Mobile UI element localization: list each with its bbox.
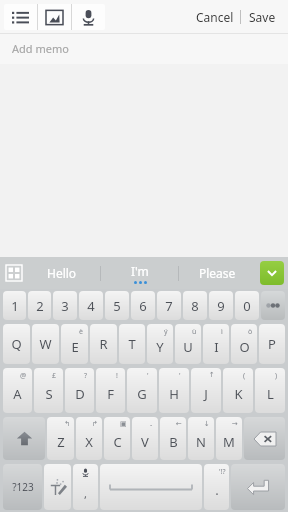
staticText: ù bbox=[192, 327, 197, 337]
button[interactable]: - bbox=[132, 417, 158, 460]
button[interactable]: ↑ bbox=[191, 368, 221, 413]
button[interactable]: 4 bbox=[79, 291, 103, 320]
staticText: U bbox=[183, 338, 193, 356]
staticText: ↓ bbox=[204, 420, 210, 428]
button[interactable]: £ bbox=[34, 368, 63, 413]
staticText: D bbox=[75, 385, 85, 403]
button[interactable]: Space bbox=[100, 464, 202, 510]
staticText: @ bbox=[20, 371, 27, 381]
staticText: ) bbox=[275, 371, 278, 381]
staticText: '!? bbox=[219, 467, 226, 477]
staticText: ↑ bbox=[209, 371, 215, 379]
button[interactable]: ? bbox=[65, 368, 94, 413]
button[interactable]: ?123 bbox=[3, 464, 42, 510]
button[interactable]: 2 bbox=[28, 291, 51, 320]
button[interactable]: Save bbox=[241, 5, 284, 29]
staticText: P bbox=[268, 335, 276, 353]
button[interactable]: , bbox=[73, 464, 98, 510]
button[interactable]: ) bbox=[255, 368, 285, 413]
button[interactable]: ↓ bbox=[188, 417, 214, 460]
button[interactable]: ↰ bbox=[47, 417, 74, 460]
staticText: è bbox=[79, 327, 83, 337]
staticText: ▣ bbox=[120, 420, 127, 428]
staticText: O bbox=[239, 338, 250, 356]
button[interactable]: ' bbox=[127, 368, 157, 413]
button[interactable]: '!? bbox=[204, 464, 229, 510]
staticText: ý bbox=[164, 327, 168, 337]
button[interactable]: Enter bbox=[231, 464, 285, 510]
staticText: B bbox=[169, 433, 178, 451]
button[interactable]: ù bbox=[175, 324, 201, 364]
button[interactable]: W bbox=[32, 324, 59, 364]
button[interactable]: 9 bbox=[209, 291, 233, 320]
staticText: 5 bbox=[113, 297, 121, 315]
button[interactable]: Hello bbox=[23, 257, 100, 289]
button[interactable]: @ bbox=[3, 368, 32, 413]
button[interactable]: 8 bbox=[183, 291, 207, 320]
staticText: ( bbox=[243, 371, 246, 381]
button[interactable]: Hide keyboard bbox=[260, 261, 284, 285]
staticText: I bbox=[214, 338, 219, 356]
staticText: ← bbox=[176, 420, 182, 428]
button[interactable]: More symbols bbox=[261, 291, 285, 320]
button[interactable]: Cancel bbox=[190, 5, 240, 29]
staticText: T bbox=[128, 335, 136, 353]
staticText: S bbox=[45, 385, 53, 403]
staticText: ! bbox=[116, 371, 118, 381]
button[interactable]: 6 bbox=[131, 291, 155, 320]
staticText: 2 bbox=[36, 297, 44, 315]
staticText: R bbox=[99, 335, 108, 353]
button[interactable]: ò bbox=[231, 324, 257, 364]
button[interactable]: Insert image bbox=[38, 4, 71, 30]
button[interactable]: 0 bbox=[235, 291, 259, 320]
button[interactable]: I'm bbox=[101, 257, 178, 289]
staticText: J bbox=[204, 385, 208, 403]
button[interactable]: Voice memo bbox=[72, 4, 105, 30]
button[interactable]: → bbox=[216, 417, 242, 460]
button[interactable]: Please bbox=[179, 257, 256, 289]
staticText: ì bbox=[221, 327, 223, 337]
button[interactable]: 5 bbox=[105, 291, 129, 320]
button[interactable]: Shift bbox=[3, 417, 45, 460]
staticText: 9 bbox=[217, 297, 225, 315]
staticText: A bbox=[13, 385, 22, 403]
button[interactable]: Handwriting bbox=[44, 464, 71, 510]
button[interactable]: ý bbox=[147, 324, 173, 364]
staticText: Add memo bbox=[12, 41, 69, 56]
button[interactable]: 7 bbox=[157, 291, 181, 320]
staticText: ↰ bbox=[64, 420, 70, 428]
button[interactable]: Keyboard options bbox=[5, 264, 23, 282]
staticText: 0 bbox=[243, 297, 251, 315]
staticText: → bbox=[232, 420, 238, 428]
button[interactable]: ' bbox=[159, 368, 189, 413]
staticText: Save bbox=[249, 9, 276, 25]
button[interactable]: Bulleted list bbox=[4, 4, 37, 30]
button[interactable]: è bbox=[61, 324, 88, 364]
button[interactable]: 3 bbox=[53, 291, 77, 320]
button[interactable]: T bbox=[119, 324, 145, 364]
staticText: Z bbox=[57, 433, 65, 451]
staticText: N bbox=[196, 433, 206, 451]
button[interactable]: 1 bbox=[3, 291, 26, 320]
button[interactable]: P bbox=[259, 324, 285, 364]
staticText: 6 bbox=[139, 297, 147, 315]
button[interactable]: ì bbox=[203, 324, 229, 364]
button[interactable]: Q bbox=[3, 324, 30, 364]
staticText: ' bbox=[179, 371, 181, 381]
button[interactable]: ▣ bbox=[104, 417, 130, 460]
staticText: X bbox=[85, 433, 93, 451]
staticText: Y bbox=[156, 338, 164, 356]
button[interactable]: ← bbox=[160, 417, 186, 460]
button[interactable]: Delete bbox=[244, 417, 285, 460]
staticText: C bbox=[113, 433, 122, 451]
staticText: 7 bbox=[165, 297, 173, 315]
staticText: Please bbox=[199, 265, 236, 281]
staticText: M bbox=[223, 433, 235, 451]
button[interactable]: ! bbox=[96, 368, 125, 413]
button[interactable]: ↱ bbox=[76, 417, 102, 460]
staticText: ?123 bbox=[12, 480, 34, 494]
staticText: , bbox=[84, 486, 87, 501]
button[interactable]: R bbox=[90, 324, 117, 364]
staticText: ↱ bbox=[92, 420, 98, 428]
button[interactable]: ( bbox=[223, 368, 253, 413]
